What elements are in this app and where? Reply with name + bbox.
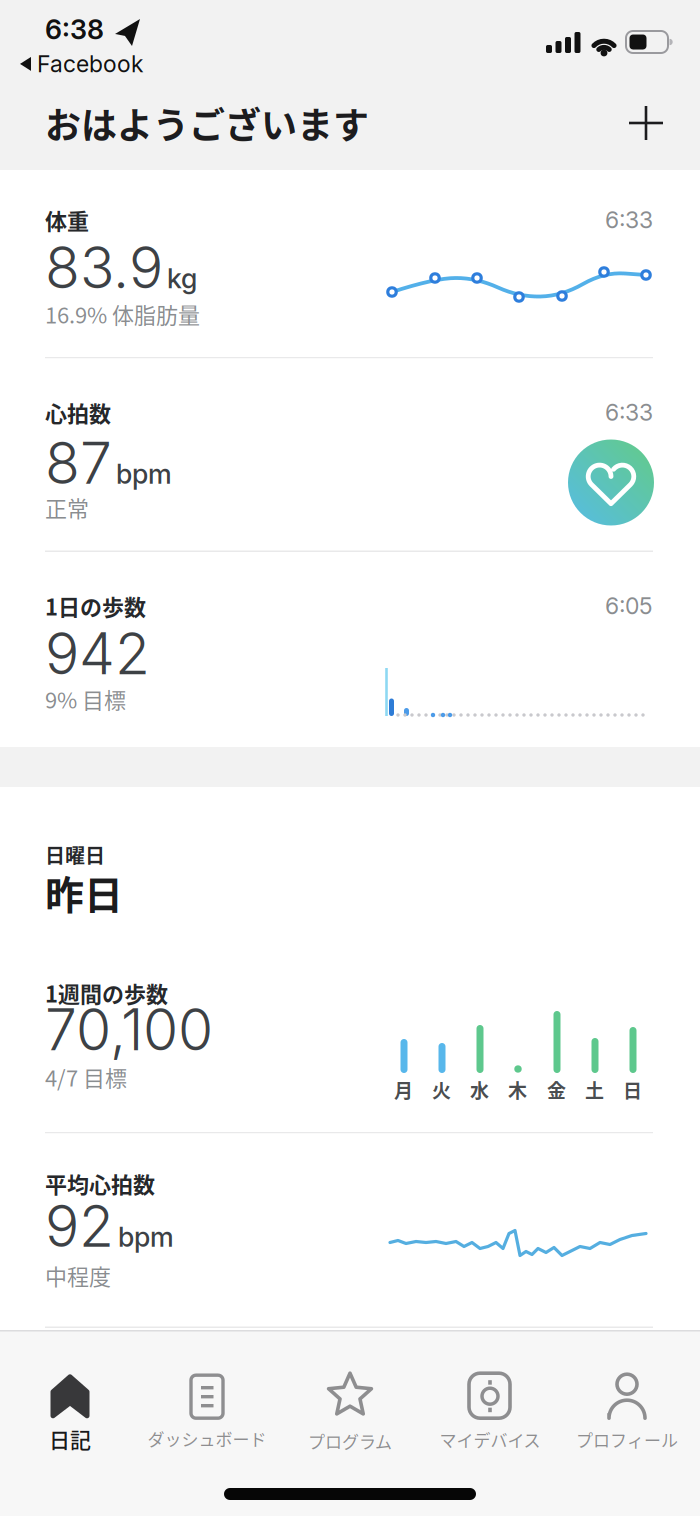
staticText: 日記 xyxy=(49,1423,91,1454)
staticText: 正常 xyxy=(45,491,89,523)
staticText: bpm xyxy=(116,458,172,490)
staticText: 水 xyxy=(470,1076,489,1103)
staticText: bpm xyxy=(118,1221,174,1253)
button[interactable]: 日記 xyxy=(49,1374,91,1454)
button[interactable]: 1週間の歩数 xyxy=(0,957,700,1132)
button[interactable]: プログラム xyxy=(308,1371,392,1453)
button[interactable]: マイデバイス xyxy=(439,1372,540,1452)
staticText: 月 xyxy=(394,1076,413,1103)
staticText: kg xyxy=(167,262,197,295)
staticText: 日曜日 xyxy=(45,840,105,869)
button[interactable]: プロフィール xyxy=(576,1372,678,1452)
staticText: 87 xyxy=(45,428,112,497)
staticText: 16.9% 体脂肪量 xyxy=(45,298,200,330)
staticText: 昨日 xyxy=(45,864,123,920)
staticText: 6:05 xyxy=(605,592,653,620)
staticText: 942 xyxy=(45,619,150,688)
button[interactable]: 体重 xyxy=(0,170,700,357)
button[interactable]: 平均心拍数 xyxy=(0,1133,700,1326)
staticText: 日 xyxy=(623,1076,642,1103)
staticText: 火 xyxy=(432,1076,451,1103)
staticText: 6:33 xyxy=(605,398,653,426)
staticText: 金 xyxy=(547,1076,566,1103)
button[interactable]: 心拍数 xyxy=(0,358,700,550)
staticText: おはようございます xyxy=(45,97,369,149)
staticText: 9% 目標 xyxy=(45,683,126,715)
staticText: Facebook xyxy=(37,50,143,78)
staticText: 6:38 xyxy=(45,13,104,46)
staticText: 6:33 xyxy=(605,206,653,234)
staticText: 中程度 xyxy=(45,1259,111,1291)
button[interactable]: 1日の歩数 xyxy=(0,552,700,747)
staticText: 70,100 xyxy=(45,995,213,1064)
staticText: 平均心拍数 xyxy=(45,1167,155,1199)
staticText: 土 xyxy=(585,1076,604,1103)
button[interactable]: Facebook xyxy=(20,50,143,78)
staticText: 1日の歩数 xyxy=(45,590,146,622)
button[interactable]: Add xyxy=(629,106,663,140)
staticText: プログラム xyxy=(308,1429,392,1453)
staticText: プロフィール xyxy=(576,1427,678,1452)
staticText: 心拍数 xyxy=(45,396,111,428)
button[interactable]: ダッシュボード xyxy=(147,1373,266,1451)
staticText: 83.9 xyxy=(45,233,163,302)
staticText: 4/7 目標 xyxy=(45,1061,127,1093)
staticText: ダッシュボード xyxy=(147,1426,266,1451)
staticText: 1週間の歩数 xyxy=(45,977,168,1009)
staticText: 木 xyxy=(508,1076,527,1103)
staticText: マイデバイス xyxy=(439,1427,540,1452)
staticText: 92 xyxy=(45,1191,114,1260)
staticText: 体重 xyxy=(45,204,89,236)
